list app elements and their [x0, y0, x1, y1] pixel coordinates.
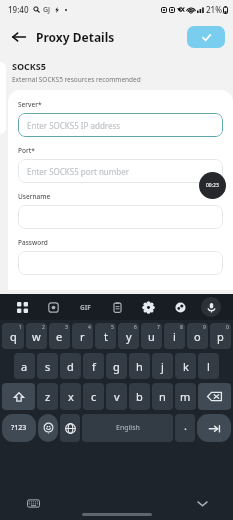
button[interactable]: a — [14, 353, 35, 379]
button[interactable]: i — [164, 323, 185, 349]
staticText: e — [56, 329, 63, 344]
button[interactable]: n — [152, 383, 173, 410]
staticText: n — [159, 389, 166, 404]
staticText: t — [104, 329, 108, 344]
staticText: 2 — [42, 324, 45, 331]
staticText: 3 — [65, 324, 68, 331]
button[interactable]: l — [198, 353, 219, 379]
button[interactable]: t — [95, 323, 116, 349]
staticText: 0 — [226, 324, 229, 331]
button[interactable]: q — [2, 323, 24, 349]
staticText: 9 — [203, 324, 206, 331]
staticText: Proxy Details — [36, 29, 115, 45]
button[interactable]: Clipboard — [107, 297, 127, 317]
staticText: 7 — [157, 324, 160, 331]
staticText: Password — [18, 238, 48, 247]
staticText: ?123 — [11, 423, 27, 433]
button[interactable] — [18, 205, 223, 229]
staticText: i — [173, 329, 176, 344]
staticText: k — [183, 359, 189, 374]
button[interactable]: Keyboard layout — [24, 494, 42, 512]
button[interactable]: g — [106, 353, 127, 379]
staticText: r — [80, 329, 85, 344]
button[interactable]: Backspace — [198, 383, 231, 410]
staticText: 8 — [180, 324, 183, 331]
button[interactable]: Change language — [60, 414, 80, 442]
staticText: Username — [18, 192, 51, 201]
button[interactable]: y — [118, 323, 139, 349]
button[interactable]: u — [141, 323, 162, 349]
button[interactable]: p — [210, 323, 231, 349]
button[interactable]: Enter SOCKS5 IP address — [18, 113, 223, 137]
staticText: p — [217, 329, 224, 344]
staticText: 00:23 — [206, 182, 219, 189]
staticText: s — [45, 359, 51, 374]
button[interactable] — [18, 251, 223, 275]
staticText: SOCKS5 — [12, 60, 46, 72]
staticText: Enter SOCKS5 port number — [27, 166, 130, 177]
staticText: h — [136, 359, 143, 374]
staticText: English — [116, 423, 140, 433]
staticText: GJ — [43, 5, 51, 15]
button[interactable]: r — [72, 323, 93, 349]
button[interactable]: Shift — [2, 383, 35, 410]
button[interactable]: Emoji — [38, 414, 58, 442]
button[interactable]: v — [106, 383, 127, 410]
staticText: 6 — [134, 324, 137, 331]
button[interactable]: e — [49, 323, 70, 349]
staticText: 5 — [111, 324, 114, 331]
button[interactable]: c — [83, 383, 104, 410]
button[interactable]: Back — [8, 26, 30, 48]
button[interactable]: Voice input — [201, 297, 221, 317]
staticText: u — [148, 329, 155, 344]
button[interactable]: f — [83, 353, 104, 379]
staticText: GIF — [80, 303, 91, 312]
staticText: Server* — [18, 100, 42, 109]
staticText: l — [207, 359, 210, 374]
button[interactable]: Apps — [12, 297, 32, 317]
staticText: 1 — [19, 324, 22, 331]
button[interactable]: x — [60, 383, 81, 410]
staticText: f — [92, 359, 96, 374]
button[interactable]: Enter SOCKS5 port number — [18, 159, 223, 183]
staticText: q — [10, 329, 17, 344]
button[interactable]: z — [37, 383, 58, 410]
button[interactable]: m — [175, 383, 196, 410]
staticText: 4 — [88, 324, 91, 331]
staticText: g — [113, 359, 120, 374]
staticText: External SOCKS5 resources recommended — [12, 75, 141, 84]
button[interactable]: Settings — [138, 297, 158, 317]
staticText: Port* — [18, 146, 35, 155]
staticText: Enter SOCKS5 IP address — [27, 120, 121, 131]
button[interactable]: Save — [187, 26, 225, 48]
button[interactable]: b — [129, 383, 150, 410]
button[interactable]: Theme — [170, 297, 190, 317]
staticText: w — [32, 329, 41, 344]
staticText: a — [21, 359, 28, 374]
button[interactable]: o — [187, 323, 208, 349]
button[interactable]: Next field — [197, 414, 231, 442]
staticText: . — [184, 418, 187, 433]
staticText: v — [114, 389, 120, 404]
button[interactable]: h — [129, 353, 150, 379]
button[interactable]: d — [60, 353, 81, 379]
button[interactable]: Hide keyboard — [193, 494, 211, 512]
staticText: o — [194, 329, 201, 344]
staticText: j — [161, 359, 164, 374]
button[interactable]: j — [152, 353, 173, 379]
staticText: 21% — [206, 4, 222, 15]
staticText: y — [126, 329, 132, 344]
button[interactable]: k — [175, 353, 196, 379]
button[interactable]: Stickers — [43, 297, 63, 317]
button[interactable]: ?123 — [2, 414, 36, 442]
button[interactable]: w — [26, 323, 47, 349]
staticText: 19:40 — [8, 4, 29, 15]
staticText: m — [180, 389, 191, 404]
button[interactable]: . — [175, 414, 195, 442]
staticText: z — [45, 389, 51, 404]
staticText: c — [91, 389, 97, 404]
button[interactable]: s — [37, 353, 58, 379]
button[interactable]: GIF — [75, 297, 95, 317]
button[interactable]: English — [82, 414, 173, 442]
button[interactable]: Call timer — [199, 172, 226, 199]
